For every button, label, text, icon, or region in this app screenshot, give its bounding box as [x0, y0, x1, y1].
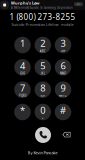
button[interactable]: Call [35, 127, 51, 143]
button[interactable]: Delete [60, 129, 73, 141]
button[interactable]: * [14, 104, 31, 120]
staticText: JKL [41, 72, 45, 75]
staticText: # [60, 104, 66, 116]
button[interactable]: 0 [34, 104, 51, 120]
button[interactable]: 9 [55, 81, 71, 98]
staticText: A Millennial’s Guide To Surviving Depres… [11, 6, 73, 9]
button[interactable]: 4 [14, 59, 31, 75]
staticText: 1 [20, 37, 25, 49]
staticText: 2 [40, 37, 45, 49]
staticText: WXYZ [59, 94, 67, 97]
staticText: TUV [40, 94, 45, 97]
staticText: GET [77, 3, 80, 5]
button[interactable]: # [55, 104, 71, 120]
staticText: 8 [40, 82, 45, 94]
staticText: ABC [40, 49, 46, 53]
staticText: 3 [60, 37, 65, 49]
staticText: * [20, 104, 25, 116]
staticText: 6 [60, 59, 65, 72]
staticText: PQRS [19, 94, 26, 97]
staticText: + [42, 116, 44, 120]
staticText: GHI [20, 72, 25, 75]
staticText: 1 (800) 273-8255 [9, 12, 75, 22]
staticText: By Kevin Pancake [27, 150, 57, 155]
staticText: DEF [61, 49, 65, 53]
staticText: 9 [60, 82, 65, 94]
button[interactable]: 8 [34, 81, 51, 98]
staticText: 5 [40, 59, 45, 72]
button[interactable]: 3 [55, 37, 71, 53]
button[interactable]: 7 [14, 81, 31, 98]
button[interactable]: 2 [34, 37, 51, 53]
button[interactable]: 6 [55, 59, 71, 75]
button[interactable]: 1 [14, 37, 31, 53]
button[interactable]: 5 [34, 59, 51, 75]
staticText: 0 [40, 104, 45, 116]
staticText: MNO [60, 72, 66, 75]
staticText: 4 [20, 59, 25, 72]
staticText: 7 [20, 82, 25, 94]
staticText: Suicide Prevention Lifeline mobile [11, 22, 74, 27]
button[interactable]: Get [74, 2, 83, 6]
staticText: Murphy’s Law [11, 0, 39, 5]
